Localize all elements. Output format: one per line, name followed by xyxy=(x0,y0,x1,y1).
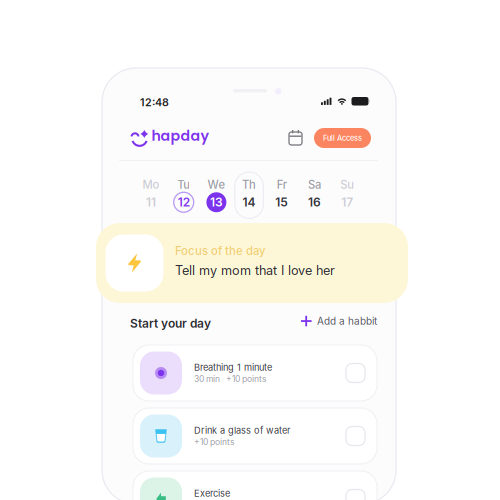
button[interactable]: We xyxy=(202,172,231,218)
staticText: Tell my mom that I love her xyxy=(175,263,335,278)
button[interactable]: Drink a glass of water xyxy=(133,408,377,464)
button[interactable]: Exercise xyxy=(133,471,377,500)
button[interactable]: Th xyxy=(235,172,263,218)
staticText: 16 xyxy=(308,195,321,209)
staticText: 12:48 xyxy=(140,96,169,109)
staticText: 11 xyxy=(146,195,156,209)
button[interactable]: Full Access xyxy=(314,128,371,148)
staticText: Start your day xyxy=(130,316,211,330)
staticText: Focus of the day xyxy=(175,244,266,258)
staticText: 14 xyxy=(243,195,256,209)
staticText: We xyxy=(207,178,225,192)
staticText: Th xyxy=(242,178,256,192)
staticText: Breathing 1 minute xyxy=(194,362,272,373)
staticText: hapday xyxy=(151,126,209,146)
button[interactable]: Sa xyxy=(300,172,329,218)
button[interactable]: Breathing 1 minute xyxy=(133,345,377,401)
staticText: +10 points xyxy=(194,437,235,447)
button[interactable]: Su xyxy=(333,172,361,218)
button[interactable]: Tu xyxy=(169,172,198,218)
button[interactable]: Mo xyxy=(137,172,165,218)
staticText: Exercise xyxy=(194,488,230,499)
staticText: 15 xyxy=(275,195,288,209)
staticText: Su xyxy=(340,178,354,192)
staticText: Full Access xyxy=(323,133,362,142)
button[interactable]: Add a habbit xyxy=(301,315,377,327)
staticText: 30 min +10 points xyxy=(194,374,267,384)
staticText: 17 xyxy=(341,195,353,209)
staticText: Tu xyxy=(177,178,190,192)
staticText: 12 xyxy=(178,195,190,209)
staticText: Drink a glass of water xyxy=(194,425,290,436)
button[interactable]: Calendar xyxy=(288,129,303,146)
staticText: 13 xyxy=(210,195,223,209)
button[interactable]: Fr xyxy=(267,172,296,218)
staticText: Add a habbit xyxy=(317,315,377,327)
staticText: Fr xyxy=(277,178,287,192)
staticText: Mo xyxy=(142,178,159,192)
staticText: Sa xyxy=(308,178,321,192)
